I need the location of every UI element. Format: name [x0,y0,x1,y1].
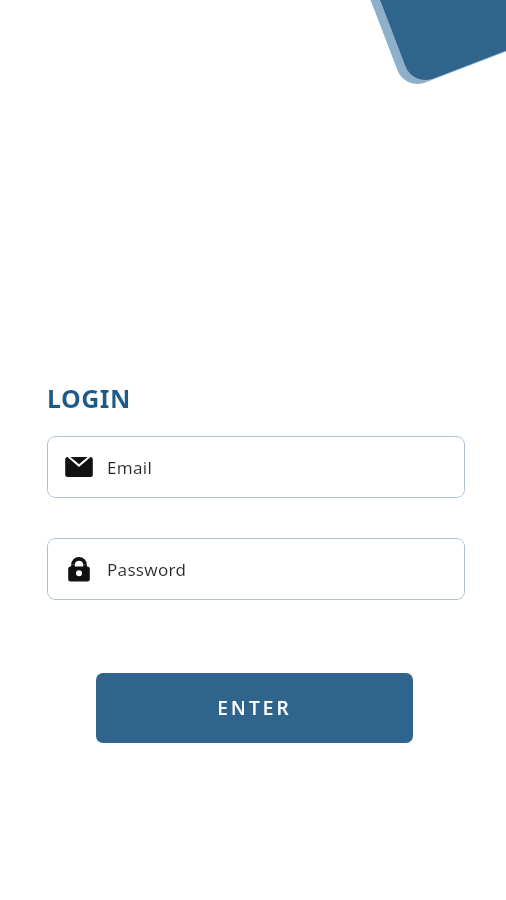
staticText: Email [107,456,153,479]
other: Password [64,554,94,584]
staticText: Password [107,558,187,581]
staticText: LOGIN [47,381,131,415]
button[interactable]: Email [47,436,465,498]
button[interactable]: Password [47,538,465,600]
staticText: ENTER [217,695,292,721]
button[interactable]: ENTER [96,673,413,743]
other: Email [64,452,94,482]
